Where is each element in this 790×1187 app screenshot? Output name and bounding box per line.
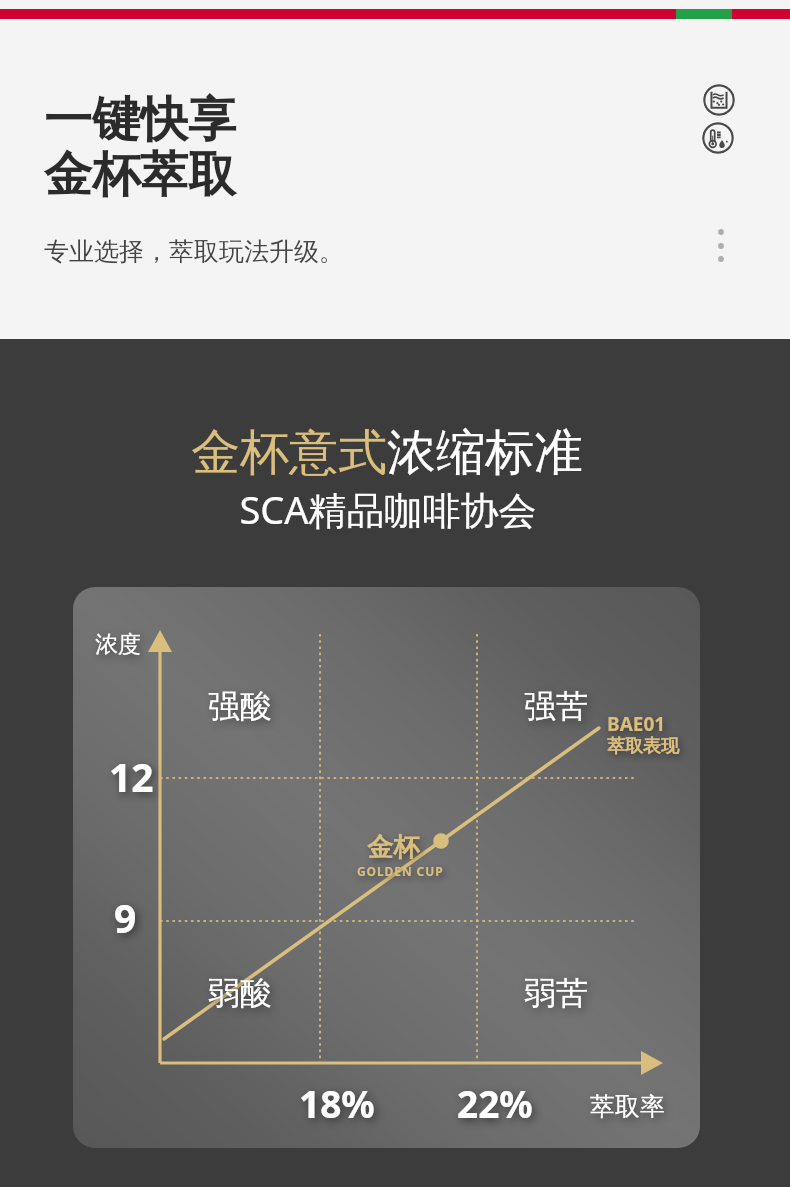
staticText: 12 [109,750,154,803]
staticText: 金杯意式 [191,422,387,484]
staticText: 18% [299,1078,375,1128]
button[interactable]: Water tank level [703,84,735,116]
staticText: 金杯 [367,831,419,864]
staticText: 弱酸 [208,973,272,1013]
staticText: 强苦 [524,686,588,726]
staticText: 金杯萃取 [44,145,236,205]
staticText: BAE01 [607,711,666,737]
staticText: 一键快享 [44,90,236,150]
staticText: 专业选择，萃取玩法升级。 [44,236,344,267]
button[interactable]: Temperature and humidity [702,122,734,154]
staticText: SCA精品咖啡协会 [0,483,783,535]
staticText: 浓度 [95,630,141,659]
staticText: 萃取表现 [607,735,679,758]
button[interactable]: Golden cup extraction chart [73,587,700,1148]
staticText: 22% [457,1078,533,1128]
staticText: GOLDEN CUP [357,863,444,879]
staticText: 9 [114,891,137,944]
staticText: 强酸 [208,686,272,726]
staticText: 萃取率 [590,1091,665,1122]
staticText: 弱苦 [524,973,588,1013]
staticText: 浓缩标准 [387,422,583,484]
button[interactable]: More options [710,222,732,270]
